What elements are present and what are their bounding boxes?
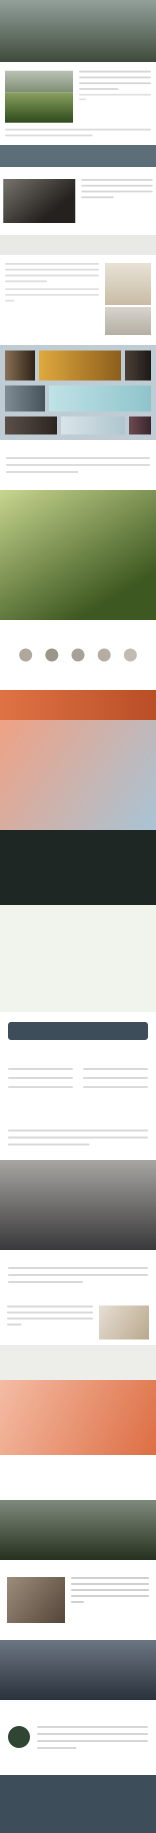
button[interactable]: Category [71,648,84,661]
button[interactable]: Category [19,648,32,661]
button[interactable]: Category [98,648,111,661]
button[interactable]: Category [124,648,137,661]
button[interactable]: Category [45,648,58,661]
button[interactable] [0,1022,156,1040]
